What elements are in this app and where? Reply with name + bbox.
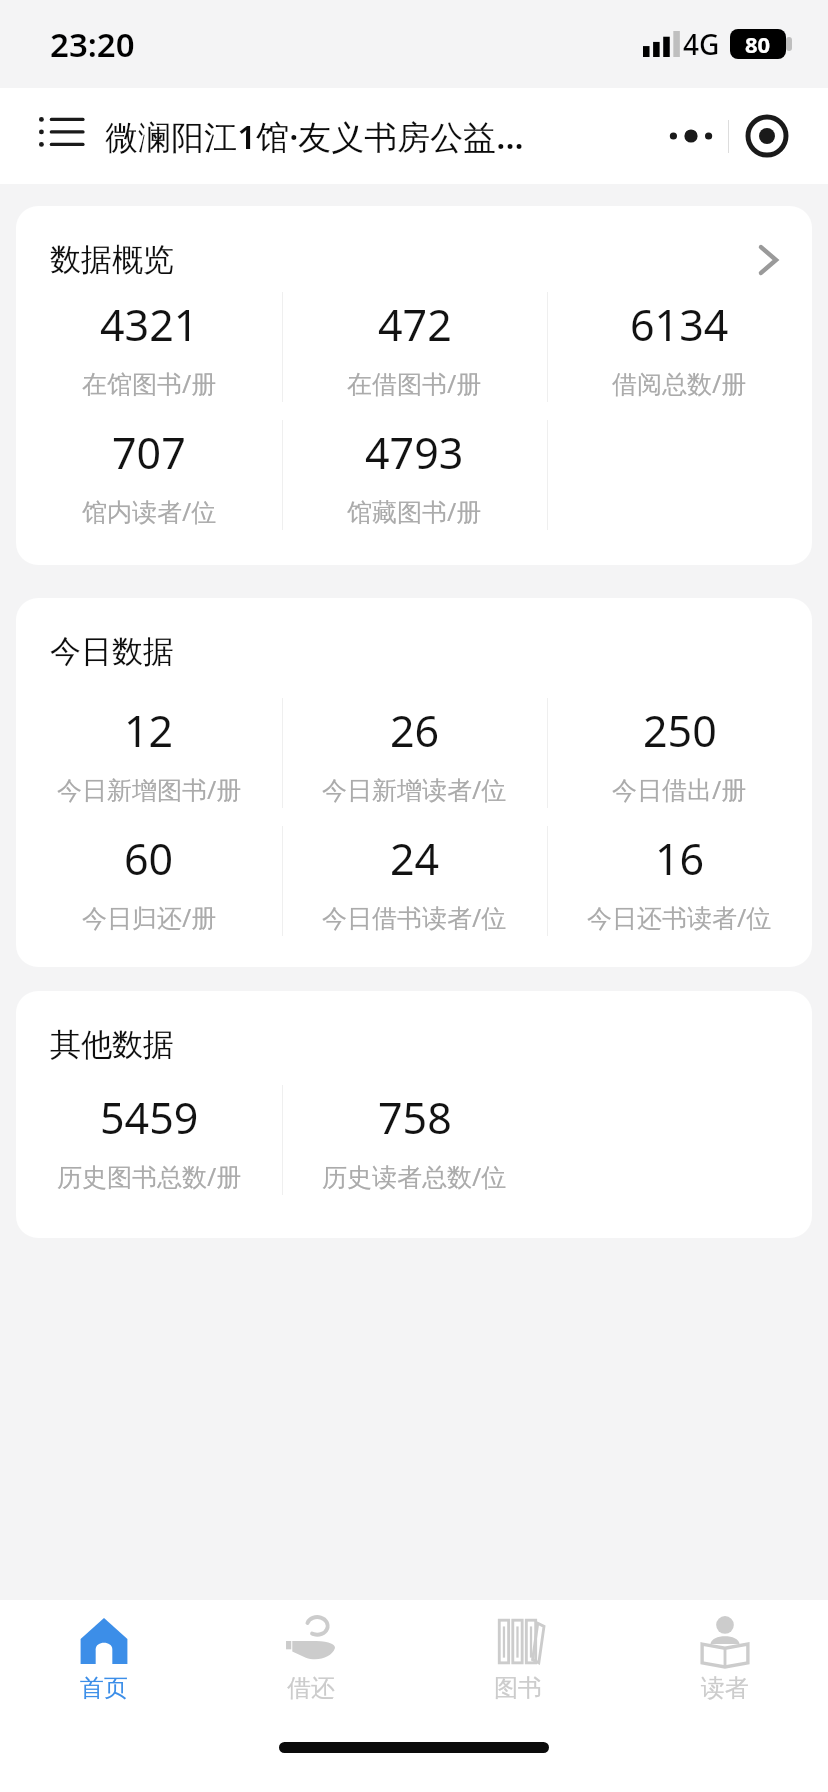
staticText: 历史读者总数/位 [322, 1159, 507, 1193]
button[interactable]: 借还 [207, 1600, 414, 1718]
staticText: 今日借书读者/位 [322, 900, 507, 934]
staticText: 23:20 [50, 22, 135, 67]
button[interactable]: 数据概览 [16, 206, 812, 283]
staticText: 首页 [80, 1673, 128, 1703]
button[interactable]: 读者 [621, 1600, 828, 1718]
staticText: 其他数据 [50, 1025, 174, 1064]
staticText: 今日还书读者/位 [587, 900, 772, 934]
button[interactable]: 16 [547, 817, 812, 945]
staticText: 图书 [494, 1673, 542, 1703]
staticText: 馆内读者/位 [82, 494, 217, 528]
staticText: 借阅总数/册 [612, 366, 747, 400]
button[interactable]: Menu [30, 105, 92, 167]
staticText: 借还 [287, 1673, 335, 1703]
staticText: 今日归还/册 [82, 900, 217, 934]
staticText: 472 [378, 295, 452, 354]
staticText: 4G [683, 25, 720, 63]
staticText: 26 [390, 701, 440, 760]
button[interactable]: 472 [282, 283, 547, 411]
staticText: 数据概览 [50, 240, 174, 279]
staticText: 4321 [100, 295, 199, 354]
button[interactable]: 4793 [282, 411, 547, 539]
staticText: 今日数据 [50, 632, 174, 671]
staticText: 今日新增读者/位 [322, 772, 507, 806]
staticText: 12 [124, 701, 174, 760]
staticText: 6134 [630, 295, 729, 354]
button[interactable]: More [654, 104, 728, 168]
staticText: 5459 [100, 1088, 199, 1147]
staticText: 250 [643, 701, 717, 760]
staticText: 60 [124, 829, 174, 888]
staticText: 历史图书总数/册 [57, 1159, 242, 1193]
button[interactable]: Close [729, 104, 804, 168]
staticText: 读者 [701, 1673, 749, 1703]
staticText: 馆藏图书/册 [347, 494, 482, 528]
button[interactable]: 图书 [414, 1600, 621, 1718]
staticText: 微澜阳江1馆·友义书房公益... [105, 114, 524, 159]
staticText: 758 [378, 1088, 452, 1147]
staticText: 在馆图书/册 [82, 366, 217, 400]
button[interactable]: 4321 [16, 283, 282, 411]
staticText: 80 [745, 29, 771, 59]
staticText: 今日新增图书/册 [57, 772, 242, 806]
staticText: 16 [655, 829, 705, 888]
button[interactable]: 758 [282, 1076, 547, 1204]
button[interactable]: 5459 [16, 1076, 282, 1204]
button[interactable]: 26 [282, 689, 547, 817]
button[interactable]: 24 [282, 817, 547, 945]
staticText: 24 [390, 829, 440, 888]
button[interactable]: 707 [16, 411, 282, 539]
staticText: 707 [112, 423, 186, 482]
button[interactable]: 12 [16, 689, 282, 817]
staticText: 今日借出/册 [612, 772, 747, 806]
staticText: 4793 [365, 423, 464, 482]
staticText: 在借图书/册 [347, 366, 482, 400]
button[interactable]: 6134 [547, 283, 812, 411]
button[interactable]: 首页 [0, 1600, 207, 1718]
button[interactable]: 60 [16, 817, 282, 945]
button[interactable]: 250 [547, 689, 812, 817]
